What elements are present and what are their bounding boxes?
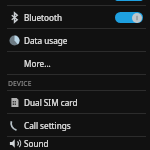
staticText: Dual SIM card: [24, 97, 78, 108]
staticText: Call settings: [24, 120, 71, 131]
staticText: Bluetooth: [24, 12, 62, 23]
staticText: Sound: [24, 138, 49, 149]
staticText: DEVICE: [8, 79, 32, 88]
button[interactable]: Data usage: [0, 29, 150, 51]
button[interactable]: Sound: [0, 137, 150, 150]
staticText: Data usage: [24, 35, 68, 46]
staticText: More...: [24, 58, 51, 69]
button[interactable]: Dual SIM card: [0, 91, 150, 113]
button[interactable]: Call settings: [0, 114, 150, 136]
button[interactable]: More...: [0, 52, 150, 74]
button[interactable]: Bluetooth: [0, 6, 150, 28]
